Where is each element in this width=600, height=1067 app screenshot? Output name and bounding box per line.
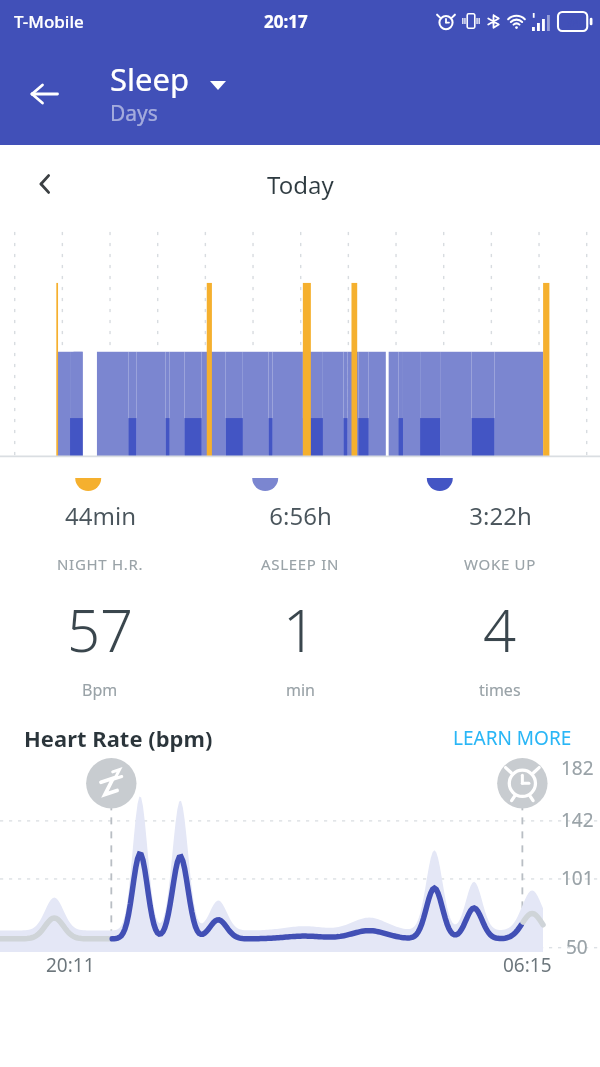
staticText: 20:17 — [264, 10, 308, 33]
staticText: Today — [267, 168, 334, 201]
staticText: Days — [110, 99, 158, 128]
staticText: 182 — [561, 755, 594, 781]
button[interactable] — [0, 223, 600, 478]
staticText: 6:56h — [269, 499, 332, 532]
staticText: 06:15 — [503, 952, 552, 978]
staticText: 20:11 — [46, 952, 95, 978]
staticText: 44min — [65, 499, 136, 532]
staticText: times — [479, 679, 521, 701]
button[interactable]: NIGHT H.R. — [0, 554, 200, 701]
staticText: 50 — [566, 934, 588, 960]
staticText: 57 — [67, 590, 134, 669]
staticText: 142 — [561, 807, 594, 833]
staticText: T-Mobile — [14, 10, 84, 33]
staticText: 1 — [283, 590, 317, 669]
button[interactable]: Sleep — [110, 58, 226, 129]
button[interactable]: WOKE UP — [400, 554, 600, 701]
staticText: ASLEEP IN — [261, 554, 340, 574]
button[interactable] — [0, 755, 600, 992]
staticText: WOKE UP — [464, 554, 536, 574]
staticText: Heart Rate (bpm) — [24, 723, 213, 753]
staticText: Bpm — [82, 679, 118, 701]
staticText: Sleep — [110, 58, 190, 100]
staticText: 4 — [483, 590, 517, 669]
button[interactable]: Previous day — [20, 159, 70, 209]
button[interactable]: ASLEEP IN — [200, 554, 400, 701]
staticText: min — [286, 679, 315, 701]
staticText: 3:22h — [469, 499, 532, 532]
staticText: LEARN MORE — [453, 725, 572, 751]
staticText: 101 — [561, 865, 594, 891]
staticText: NIGHT H.R. — [57, 554, 144, 574]
button[interactable]: Back — [16, 66, 72, 122]
button[interactable]: LEARN MORE — [449, 721, 576, 755]
